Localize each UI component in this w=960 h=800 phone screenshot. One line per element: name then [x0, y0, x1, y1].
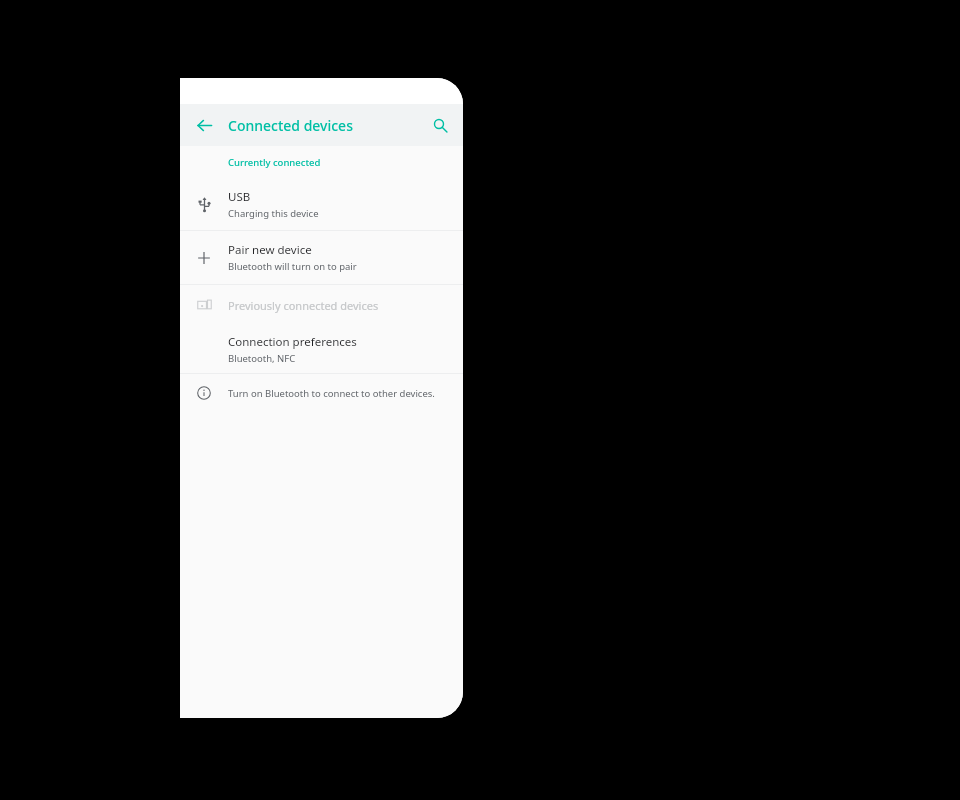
- staticText: Pair new device: [228, 242, 312, 258]
- button[interactable]: Search: [423, 108, 457, 142]
- staticText: Currently connected: [228, 156, 321, 169]
- staticText: Charging this device: [228, 207, 319, 220]
- button[interactable]: Connection preferences: [180, 325, 463, 373]
- button[interactable]: Back: [186, 107, 222, 143]
- staticText: Bluetooth will turn on to pair: [228, 260, 357, 273]
- button[interactable]: USB: [180, 178, 463, 230]
- button[interactable]: Pair new device: [180, 231, 463, 284]
- staticText: Connection preferences: [228, 334, 357, 350]
- staticText: Bluetooth, NFC: [228, 352, 296, 365]
- button[interactable]: Previously connected devices: [180, 285, 463, 325]
- staticText: Previously connected devices: [228, 298, 379, 313]
- staticText: Turn on Bluetooth to connect to other de…: [228, 387, 435, 400]
- staticText: USB: [228, 189, 251, 205]
- staticText: Connected devices: [228, 116, 353, 135]
